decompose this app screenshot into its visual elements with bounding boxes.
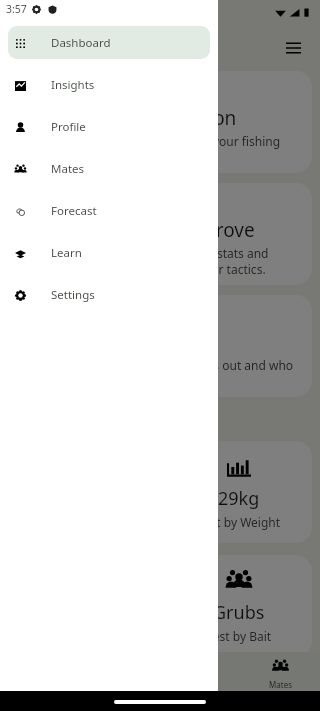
staticText: Learn xyxy=(51,245,82,261)
staticText: Profile xyxy=(51,119,86,135)
staticText: Follow your best mates, see who is out a… xyxy=(24,357,296,389)
staticText: Dashboard xyxy=(51,35,111,51)
staticText: Insights xyxy=(51,77,95,93)
staticText: Forecast xyxy=(51,203,97,219)
button[interactable]: Dashboard xyxy=(8,26,210,59)
button[interactable]: Insights xyxy=(8,68,210,101)
button[interactable]: Open navigation menu xyxy=(274,29,312,67)
staticText: Mates xyxy=(269,679,292,690)
button[interactable]: Welcome to Fishception xyxy=(8,71,312,173)
button[interactable]: Track and always Improve xyxy=(8,183,312,285)
button[interactable]: Log xyxy=(80,652,160,697)
button[interactable]: Forecast xyxy=(8,194,210,227)
staticText: 29kg xyxy=(218,486,260,511)
staticText: Keep a log of all your trips, review sta… xyxy=(24,245,296,277)
button[interactable]: Profile xyxy=(8,110,210,143)
staticText: Best by Bait xyxy=(205,628,272,644)
button[interactable]: 29kg xyxy=(164,441,312,543)
staticText: Welcome to Fishception xyxy=(24,105,237,131)
button[interactable]: Mates xyxy=(240,652,320,697)
button[interactable]: Meet all your Friends xyxy=(8,295,312,397)
staticText: Track and always Improve xyxy=(24,217,255,243)
staticText: Log every catch and plan to track your f… xyxy=(24,133,281,149)
staticText: Best by Weight xyxy=(196,514,281,530)
button[interactable]: Home xyxy=(0,652,80,697)
staticText: 3:57 xyxy=(6,2,27,16)
button[interactable]: Stats xyxy=(160,652,240,697)
staticText: Mates xyxy=(51,161,85,177)
button[interactable]: Learn xyxy=(8,236,210,269)
staticText: Settings xyxy=(51,287,95,303)
button[interactable]: Mates xyxy=(8,152,210,185)
staticText: Grubs xyxy=(213,600,265,625)
button[interactable]: Grubs xyxy=(164,555,312,657)
button[interactable]: Settings xyxy=(8,278,210,311)
